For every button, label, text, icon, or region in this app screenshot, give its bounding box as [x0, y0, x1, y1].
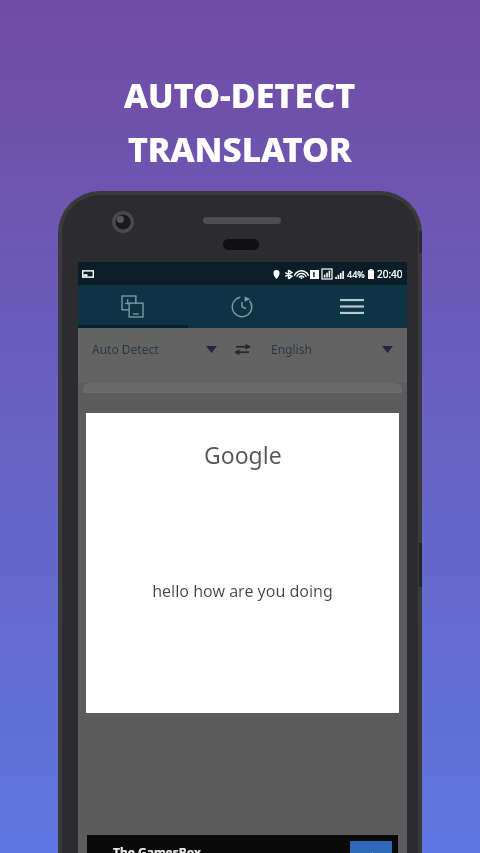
button[interactable]: Translate: [78, 285, 187, 328]
staticText: AUTO-DETECT: [124, 72, 356, 118]
button[interactable]: Swap languages: [227, 334, 257, 364]
staticText: Auto Detect: [92, 341, 159, 357]
button[interactable]: The GamesBox: [87, 835, 398, 853]
staticText: TRANSLATOR: [128, 126, 352, 172]
staticText: English: [271, 341, 312, 357]
staticText: The GamesBox: [113, 844, 201, 853]
button[interactable]: English: [257, 341, 393, 357]
staticText: 20:40: [377, 267, 403, 281]
staticText: Google: [204, 439, 282, 470]
staticText: hello how are you doing: [152, 580, 333, 602]
button[interactable]: Menu: [297, 285, 407, 328]
button[interactable]: History: [187, 285, 297, 328]
button[interactable]: Auto Detect: [92, 341, 227, 357]
staticText: 44%: [347, 268, 365, 280]
